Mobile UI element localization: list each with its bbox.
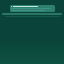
button[interactable]: Status xyxy=(10,5,55,12)
